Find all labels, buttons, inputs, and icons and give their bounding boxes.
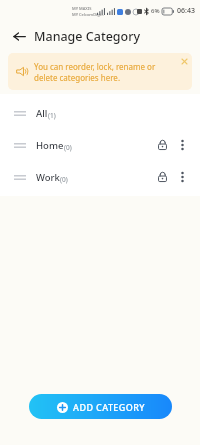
- staticText: 6%: [151, 7, 160, 15]
- staticText: ADD CATEGORY: [73, 401, 145, 413]
- button[interactable]: Reorder Home: [13, 139, 26, 151]
- staticText: 06:43: [177, 6, 195, 16]
- button[interactable]: Close banner: [178, 55, 190, 67]
- button[interactable]: Lock Work: [152, 167, 172, 187]
- button[interactable]: More options for Home: [172, 135, 192, 155]
- staticText: You can reorder, lock, rename or delete …: [34, 61, 172, 83]
- button[interactable]: Back: [8, 25, 30, 47]
- staticText: (1): [48, 111, 56, 120]
- button[interactable]: Reorder All: [0, 97, 200, 129]
- staticText: Manage Category: [34, 28, 141, 45]
- button[interactable]: Lock Home: [152, 135, 172, 155]
- button[interactable]: More options for Work: [172, 167, 192, 187]
- staticText: MY MAXIS: [72, 6, 92, 11]
- button[interactable]: ADD CATEGORY: [29, 394, 172, 419]
- staticText: Home: [36, 139, 64, 152]
- staticText: (0): [60, 175, 68, 184]
- staticText: Work: [36, 171, 60, 184]
- button[interactable]: Reorder All: [13, 107, 26, 119]
- button[interactable]: Reorder Home: [0, 129, 200, 161]
- staticText: All: [36, 107, 48, 120]
- staticText: MY CelcomDigi...: [72, 12, 104, 17]
- button[interactable]: Reorder Work: [13, 171, 26, 183]
- staticText: (0): [64, 143, 72, 152]
- button[interactable]: Reorder Work: [0, 161, 200, 193]
